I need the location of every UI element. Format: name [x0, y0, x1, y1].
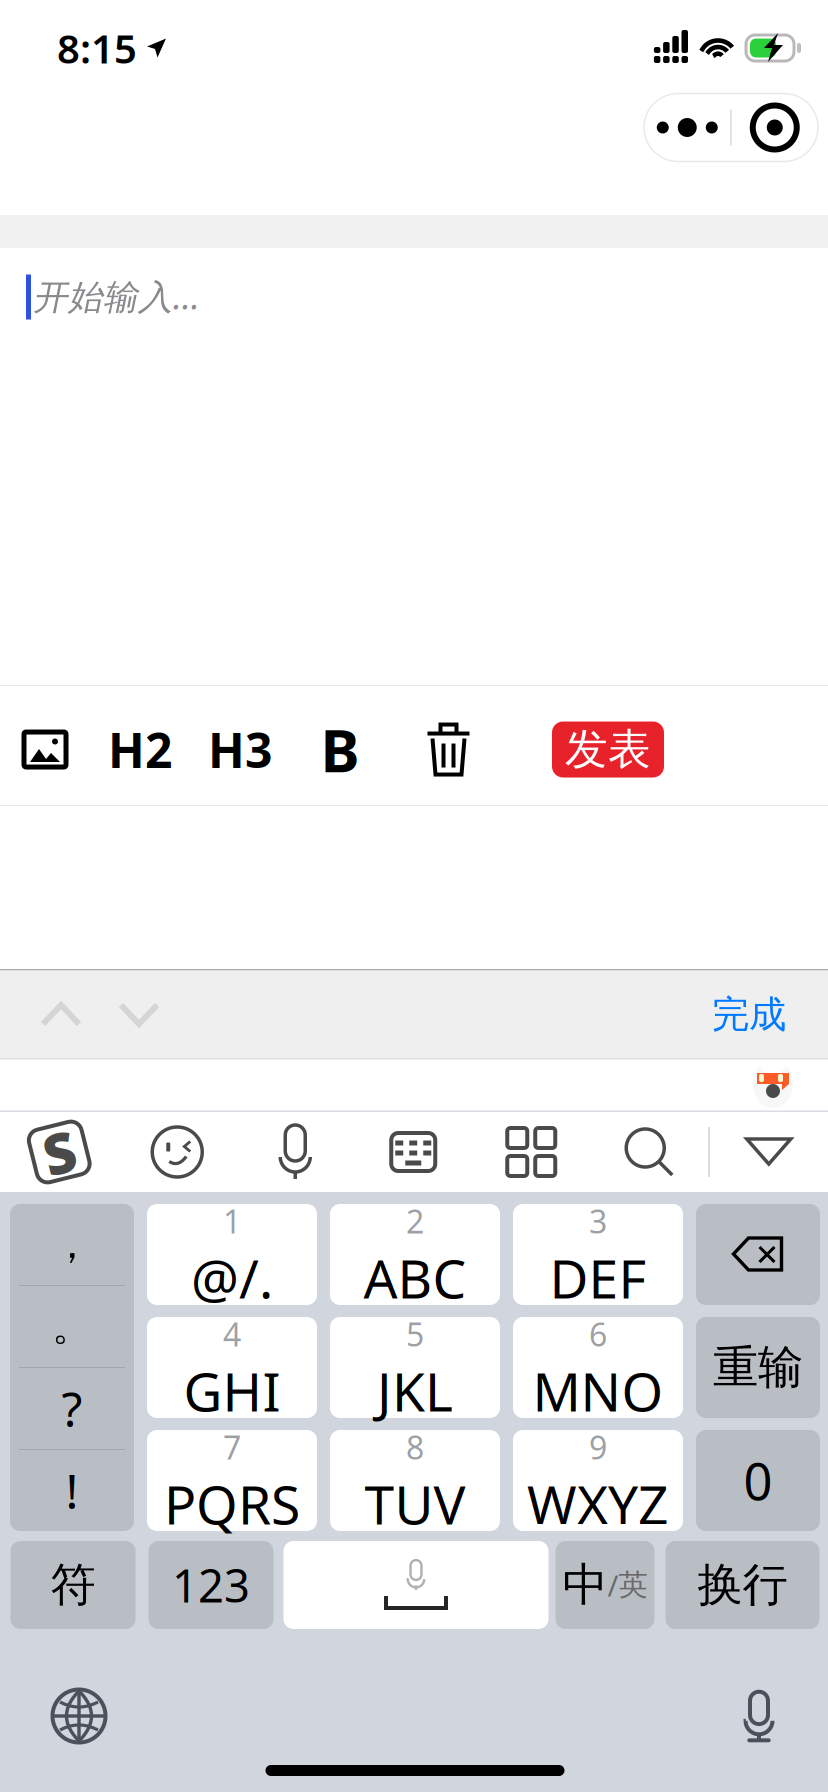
staticText: 9 [589, 1426, 607, 1468]
button[interactable]: H3 [190, 690, 290, 809]
button[interactable]: ! [10, 1450, 134, 1531]
staticText: H3 [208, 718, 272, 781]
staticText: 2 [406, 1200, 424, 1242]
staticText: ， [52, 1220, 92, 1269]
button[interactable]: 8 [330, 1430, 500, 1531]
button[interactable]: Emoji [118, 1112, 236, 1192]
staticText: 符 [50, 1557, 95, 1613]
button[interactable]: ， [10, 1204, 134, 1285]
button[interactable]: 发表 [552, 721, 664, 777]
staticText: DEF [549, 1242, 646, 1313]
button[interactable]: ? [10, 1368, 134, 1449]
staticText: 发表 [565, 723, 651, 776]
staticText: 5 [406, 1313, 424, 1355]
button[interactable]: 0 [696, 1430, 820, 1531]
staticText: 重输 [713, 1340, 803, 1395]
button[interactable]: 中 [555, 1541, 654, 1629]
button[interactable]: 重输 [696, 1317, 820, 1418]
button[interactable]: Input assistant [750, 1059, 796, 1111]
button[interactable]: More [644, 93, 730, 161]
button[interactable]: Close mini program [732, 93, 818, 161]
button[interactable]: Previous field [20, 970, 102, 1058]
button[interactable]: Voice input [236, 1112, 354, 1192]
button[interactable]: 5 [330, 1317, 500, 1418]
staticText: / [607, 1565, 618, 1604]
staticText: 6 [589, 1313, 607, 1355]
staticText: 。 [52, 1302, 92, 1351]
button[interactable]: More tools [472, 1112, 590, 1192]
button[interactable]: Search [590, 1112, 708, 1192]
staticText: 1 [223, 1200, 241, 1242]
button[interactable]: 换行 [665, 1541, 819, 1629]
staticText: 完成 [712, 992, 786, 1037]
staticText: 中 [562, 1557, 607, 1613]
staticText: WXYZ [527, 1468, 669, 1539]
button[interactable]: Sogou input [0, 1112, 118, 1192]
button[interactable]: Delete [390, 690, 491, 809]
button[interactable]: 符 [10, 1541, 135, 1629]
staticText: ABC [363, 1242, 466, 1313]
button[interactable]: Insert image [0, 690, 90, 809]
staticText: H2 [108, 718, 172, 781]
staticText: 换行 [697, 1557, 787, 1613]
staticText: 123 [172, 1555, 250, 1615]
staticText: 英 [618, 1567, 647, 1603]
staticText: 7 [223, 1426, 241, 1468]
button[interactable]: 1 [147, 1204, 317, 1305]
staticText: ? [61, 1377, 82, 1440]
staticText: PQRS [164, 1468, 300, 1539]
button[interactable]: H2 [90, 690, 190, 809]
staticText: ! [65, 1459, 78, 1522]
button[interactable]: 6 [513, 1317, 683, 1418]
staticText: B [320, 710, 359, 788]
button[interactable]: 4 [147, 1317, 317, 1418]
button[interactable]: 123 [148, 1541, 273, 1629]
button[interactable]: Keyboard layout [354, 1112, 472, 1192]
button[interactable]: 2 [330, 1204, 500, 1305]
button[interactable]: Switch keyboard [9, 1679, 149, 1753]
staticText: @/. [191, 1242, 273, 1313]
staticText: S [43, 1115, 75, 1189]
staticText: GHI [183, 1355, 280, 1426]
button[interactable]: 7 [147, 1430, 317, 1531]
staticText: 开始输入... [33, 273, 200, 319]
staticText: MNO [532, 1355, 663, 1426]
button[interactable]: 3 [513, 1204, 683, 1305]
staticText: JKL [377, 1355, 453, 1426]
staticText: 3 [589, 1200, 607, 1242]
staticText: 8:15 [57, 21, 137, 74]
button[interactable]: Space [283, 1541, 548, 1629]
staticText: 0 [743, 1447, 772, 1514]
button[interactable]: Dictate [689, 1679, 828, 1753]
button[interactable]: Delete [696, 1204, 820, 1305]
button[interactable]: Next field [102, 970, 176, 1058]
button[interactable]: 9 [513, 1430, 683, 1531]
button[interactable]: 。 [10, 1286, 134, 1367]
button[interactable]: 完成 [698, 970, 800, 1058]
button[interactable]: Hide keyboard [710, 1112, 828, 1192]
staticText: 8 [406, 1426, 424, 1468]
button[interactable]: B [290, 690, 390, 809]
staticText: 4 [223, 1313, 241, 1355]
staticText: TUV [364, 1468, 465, 1539]
